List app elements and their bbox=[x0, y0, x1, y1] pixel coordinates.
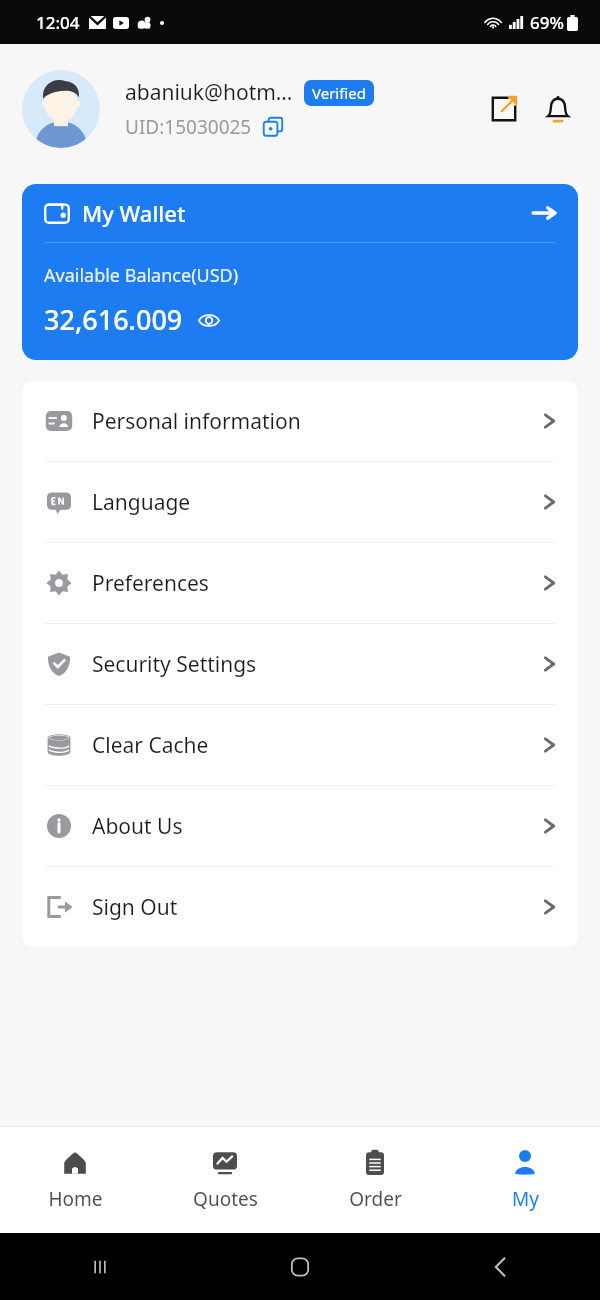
button[interactable]: My bbox=[450, 1127, 600, 1233]
button[interactable]: Quotes bbox=[150, 1127, 300, 1233]
staticText: Home bbox=[48, 1186, 103, 1212]
button[interactable]: Avatar bbox=[22, 70, 100, 148]
staticText: 69% bbox=[530, 11, 564, 34]
staticText: abaniuk@hotm… bbox=[125, 78, 293, 107]
staticText: Quotes bbox=[193, 1186, 258, 1212]
button[interactable]: Notifications bbox=[538, 89, 578, 129]
staticText: My Wallet bbox=[82, 198, 186, 228]
button[interactable]: Home bbox=[200, 1233, 400, 1300]
button[interactable]: Language bbox=[22, 462, 578, 542]
staticText: Order bbox=[349, 1186, 402, 1212]
button[interactable]: Verified bbox=[304, 80, 374, 106]
staticText: Verified bbox=[312, 83, 366, 103]
button[interactable]: My Wallet bbox=[22, 184, 578, 360]
button[interactable]: Personal information bbox=[22, 381, 578, 461]
staticText: Available Balance(USD) bbox=[44, 263, 239, 288]
button[interactable]: Sign Out bbox=[22, 867, 578, 947]
staticText: Clear Cache bbox=[92, 731, 209, 760]
staticText: Language bbox=[92, 488, 191, 517]
staticText: UID:15030025 bbox=[125, 114, 252, 140]
button[interactable]: Home bbox=[0, 1127, 150, 1233]
button[interactable]: About Us bbox=[22, 786, 578, 866]
button[interactable]: Share bbox=[484, 89, 524, 129]
button[interactable]: Toggle balance visibility bbox=[197, 308, 221, 332]
staticText: About Us bbox=[92, 812, 183, 841]
staticText: Security Settings bbox=[92, 650, 257, 679]
staticText: My bbox=[512, 1186, 539, 1212]
staticText: Preferences bbox=[92, 569, 209, 598]
button[interactable]: Copy UID bbox=[262, 116, 284, 138]
button[interactable]: Clear Cache bbox=[22, 705, 578, 785]
staticText: 12:04 bbox=[36, 11, 80, 34]
button[interactable]: Security Settings bbox=[22, 624, 578, 704]
staticText: 32,616.009 bbox=[44, 301, 183, 338]
staticText: Personal information bbox=[92, 407, 301, 436]
button[interactable]: Back bbox=[400, 1233, 600, 1300]
staticText: Sign Out bbox=[92, 893, 178, 922]
button[interactable]: Order bbox=[300, 1127, 450, 1233]
button[interactable]: Recent apps bbox=[0, 1233, 200, 1300]
button[interactable]: Preferences bbox=[22, 543, 578, 623]
